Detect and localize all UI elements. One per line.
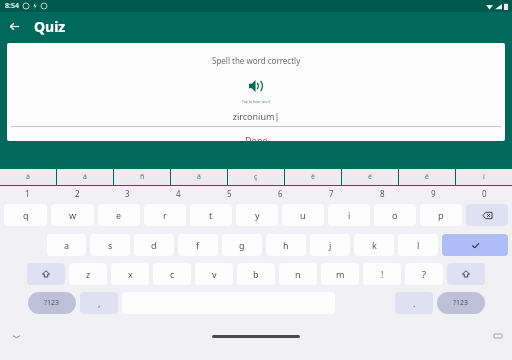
button[interactable]: Done (7, 134, 505, 141)
button[interactable]: Shift (27, 263, 65, 285)
staticText: q (23, 209, 29, 221)
staticText: c (170, 268, 175, 280)
button[interactable]: w (51, 204, 94, 226)
staticText: z (86, 268, 91, 280)
button[interactable]: i (328, 204, 370, 226)
button[interactable]: Backspace (466, 204, 508, 226)
button[interactable]: ! (363, 263, 401, 285)
button[interactable]: o (374, 204, 416, 226)
button[interactable]: Shift (447, 263, 485, 285)
staticText: . (413, 297, 416, 309)
button[interactable]: ? (405, 263, 443, 285)
staticText: o (392, 209, 398, 221)
staticText: ? (422, 268, 426, 280)
staticText: r (163, 209, 167, 221)
button[interactable]: ?123 (28, 292, 76, 314)
button[interactable]: t (190, 204, 232, 226)
staticText: i (348, 209, 351, 221)
staticText: , (98, 297, 101, 309)
button[interactable]: p (420, 204, 462, 226)
button[interactable]: m (321, 263, 359, 285)
staticText: 6 (278, 188, 283, 199)
staticText: 2 (75, 188, 80, 199)
button[interactable]: Hide keyboard (10, 330, 22, 342)
staticText: 9 (431, 188, 436, 199)
staticText: l (417, 239, 420, 251)
button[interactable]: f (178, 234, 218, 256)
staticText: j (329, 239, 332, 251)
button[interactable]: Enter (442, 234, 508, 256)
button[interactable]: z (69, 263, 107, 285)
staticText: 7 (329, 188, 334, 199)
button[interactable]: ê (399, 169, 455, 185)
button[interactable]: k (354, 234, 394, 256)
button[interactable]: l (398, 234, 438, 256)
staticText: á (83, 172, 87, 182)
staticText: u (300, 209, 306, 221)
staticText: n (295, 268, 301, 280)
staticText: y (255, 209, 260, 221)
staticText: w (69, 209, 77, 221)
button[interactable]: ?123 (437, 292, 485, 314)
staticText: a (64, 239, 70, 251)
button[interactable]: á (57, 169, 113, 185)
staticText: g (239, 239, 245, 251)
button[interactable]: í (456, 169, 512, 185)
button[interactable]: ñ (114, 169, 170, 185)
staticText: 1 (25, 188, 30, 199)
button[interactable]: Back (0, 12, 28, 40)
button[interactable]: n (279, 263, 317, 285)
button[interactable]: b (237, 263, 275, 285)
button[interactable]: ç (228, 169, 284, 185)
staticText: Done (245, 134, 268, 141)
staticText: é (368, 172, 372, 182)
staticText: à (26, 172, 30, 182)
staticText: ê (425, 172, 429, 182)
button[interactable]: y (236, 204, 278, 226)
staticText: d (151, 239, 157, 251)
staticText: ä (197, 172, 201, 182)
button[interactable]: h (266, 234, 306, 256)
staticText: f (196, 239, 200, 251)
button[interactable]: Switch keyboard (492, 330, 504, 342)
staticText: 5 (227, 188, 232, 199)
staticText: ?123 (44, 298, 60, 308)
staticText: zirconium| (7, 110, 505, 122)
button[interactable]: è (285, 169, 341, 185)
button[interactable]: . (395, 292, 433, 314)
button[interactable]: , (80, 292, 118, 314)
staticText: Quiz (34, 17, 66, 36)
button[interactable]: j (310, 234, 350, 256)
button[interactable]: g (222, 234, 262, 256)
button[interactable]: à (0, 169, 56, 185)
staticText: 8:54 (5, 1, 19, 11)
button[interactable]: q (4, 204, 47, 226)
button[interactable]: u (282, 204, 324, 226)
staticText: í (483, 172, 485, 182)
button[interactable]: r (144, 204, 186, 226)
button[interactable]: Play word audio (245, 75, 267, 97)
button[interactable]: x (111, 263, 149, 285)
staticText: Spell the word correctly (212, 55, 301, 66)
button[interactable]: c (153, 263, 191, 285)
button[interactable]: a (47, 234, 86, 256)
staticText: ?123 (453, 298, 469, 308)
button[interactable]: d (134, 234, 174, 256)
staticText: x (128, 268, 133, 280)
button[interactable]: v (195, 263, 233, 285)
staticText: è (311, 172, 315, 182)
staticText: k (372, 239, 377, 251)
button[interactable]: e (98, 204, 140, 226)
button[interactable]: é (342, 169, 398, 185)
staticText: b (253, 268, 259, 280)
button[interactable]: s (90, 234, 130, 256)
staticText: v (212, 268, 217, 280)
staticText: e (116, 209, 122, 221)
staticText: ! (381, 268, 384, 280)
staticText: 4 (176, 188, 181, 199)
button[interactable]: ä (171, 169, 227, 185)
staticText: ç (254, 172, 258, 182)
staticText: Tap to hear word (242, 99, 270, 104)
staticText: p (438, 209, 444, 221)
